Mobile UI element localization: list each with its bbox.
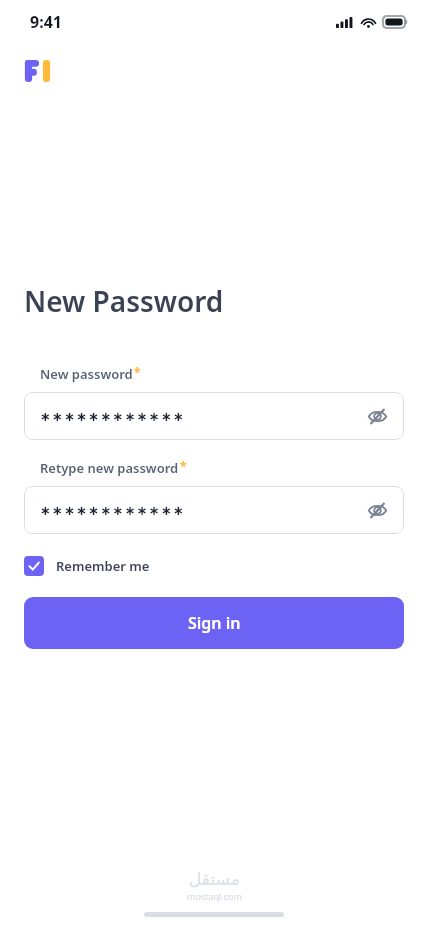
- staticText: *: [134, 364, 141, 380]
- staticText: *: [180, 458, 187, 474]
- staticText: New Password: [24, 282, 224, 320]
- button[interactable]: Remember me: [24, 556, 150, 576]
- button[interactable]: ∗∗∗∗∗∗∗∗∗∗∗∗: [24, 486, 404, 534]
- staticText: Sign in: [188, 612, 241, 634]
- staticText: ∗∗∗∗∗∗∗∗∗∗∗∗: [40, 503, 364, 518]
- button[interactable]: Show password: [364, 403, 390, 429]
- staticText: Remember me: [56, 557, 150, 575]
- button[interactable]: ∗∗∗∗∗∗∗∗∗∗∗∗: [24, 392, 404, 440]
- staticText: Retype new password: [40, 459, 179, 477]
- button[interactable]: Show password: [364, 497, 390, 523]
- other: Logo: [24, 60, 54, 82]
- button[interactable]: Sign in: [24, 597, 404, 649]
- staticText: 9:41: [30, 11, 62, 33]
- staticText: ∗∗∗∗∗∗∗∗∗∗∗∗: [40, 409, 364, 424]
- staticText: New password: [40, 365, 133, 383]
- staticText: مستقل: [189, 869, 240, 889]
- staticText: mostaql.com: [187, 890, 242, 902]
